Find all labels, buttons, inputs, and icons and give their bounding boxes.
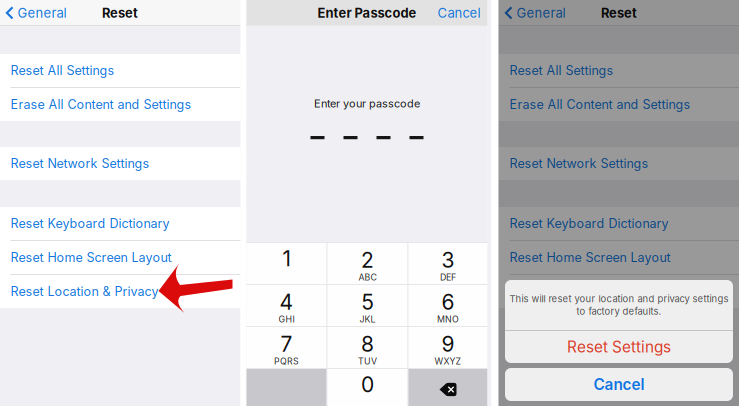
staticText: General <box>17 5 66 21</box>
button[interactable]: 6 <box>408 285 487 326</box>
staticText: 4 <box>279 289 293 315</box>
staticText: to factory defaults. <box>576 305 661 317</box>
button[interactable]: 5 <box>327 285 407 326</box>
staticText: Reset Home Screen Layout <box>10 250 171 265</box>
staticText: 3 <box>441 247 454 273</box>
staticText: 2 <box>361 247 374 273</box>
staticText: Enter your passcode <box>314 97 420 110</box>
staticText: Reset Network Settings <box>509 156 648 171</box>
staticText: PQRS <box>274 356 299 366</box>
staticText: Reset Network Settings <box>10 156 149 171</box>
staticText: Erase All Content and Settings <box>509 97 690 112</box>
staticText: Cancel <box>593 375 644 394</box>
button[interactable]: 3 <box>408 243 487 284</box>
button[interactable]: Reset Network Settings <box>0 147 240 180</box>
button[interactable]: Reset Home Screen Layout <box>0 241 240 274</box>
staticText: Erase All Content and Settings <box>10 97 191 112</box>
button[interactable]: 1 <box>246 243 326 284</box>
button[interactable]: 2 <box>327 243 407 284</box>
staticText: Reset Keyboard Dictionary <box>509 216 668 231</box>
staticText: TUV <box>358 356 377 366</box>
button[interactable]: Reset Network Settings <box>498 147 739 180</box>
button[interactable]: Reset All Settings <box>0 54 240 87</box>
staticText: 6 <box>441 289 454 315</box>
staticText: Reset Location & Privacy <box>10 284 158 299</box>
staticText: DEF <box>440 272 456 282</box>
button[interactable]: Cancel <box>437 0 487 26</box>
button[interactable]: Reset Keyboard Dictionary <box>498 207 739 240</box>
button[interactable]: General <box>498 0 571 26</box>
staticText: Reset Settings <box>567 338 671 356</box>
button[interactable]: 9 <box>408 327 487 368</box>
staticText: WXYZ <box>434 356 461 366</box>
staticText: 1 <box>282 246 290 271</box>
staticText: Reset Location & Privacy <box>509 284 657 299</box>
staticText: GHI <box>278 314 294 324</box>
staticText: JKL <box>359 314 375 324</box>
button[interactable]: Delete <box>408 369 487 406</box>
staticText: 7 <box>280 331 292 357</box>
button[interactable]: 0 <box>327 369 407 406</box>
staticText: General <box>516 5 565 21</box>
staticText: Reset Keyboard Dictionary <box>10 216 169 231</box>
staticText: ABC <box>358 272 376 282</box>
button[interactable]: Reset Keyboard Dictionary <box>0 207 240 240</box>
staticText: MNO <box>437 314 459 324</box>
staticText: Reset All Settings <box>10 63 114 78</box>
button[interactable]: Erase All Content and Settings <box>0 88 240 121</box>
staticText: Reset <box>102 5 138 21</box>
staticText: Cancel <box>437 5 480 21</box>
staticText: Reset All Settings <box>509 63 613 78</box>
staticText: This will reset your location and privac… <box>509 293 728 304</box>
staticText: 0 <box>361 372 374 397</box>
staticText: Reset <box>601 5 637 21</box>
staticText: Enter Passcode <box>317 5 416 21</box>
button[interactable]: Reset Location & Privacy <box>0 275 240 308</box>
button[interactable]: Reset Location & Privacy <box>498 275 739 308</box>
button[interactable]: Reset Home Screen Layout <box>498 241 739 274</box>
button[interactable]: 4 <box>246 285 326 326</box>
button[interactable]: Cancel <box>505 368 733 401</box>
button[interactable]: Erase All Content and Settings <box>498 88 739 121</box>
staticText: 9 <box>441 331 454 357</box>
staticText: 8 <box>361 331 374 357</box>
button[interactable]: General <box>0 0 72 26</box>
button[interactable]: Reset All Settings <box>498 54 739 87</box>
staticText: 5 <box>361 289 373 315</box>
staticText: Reset Home Screen Layout <box>509 250 670 265</box>
button[interactable]: 8 <box>327 327 407 368</box>
button[interactable]: 7 <box>246 327 326 368</box>
button[interactable]: Reset Settings <box>505 331 733 363</box>
